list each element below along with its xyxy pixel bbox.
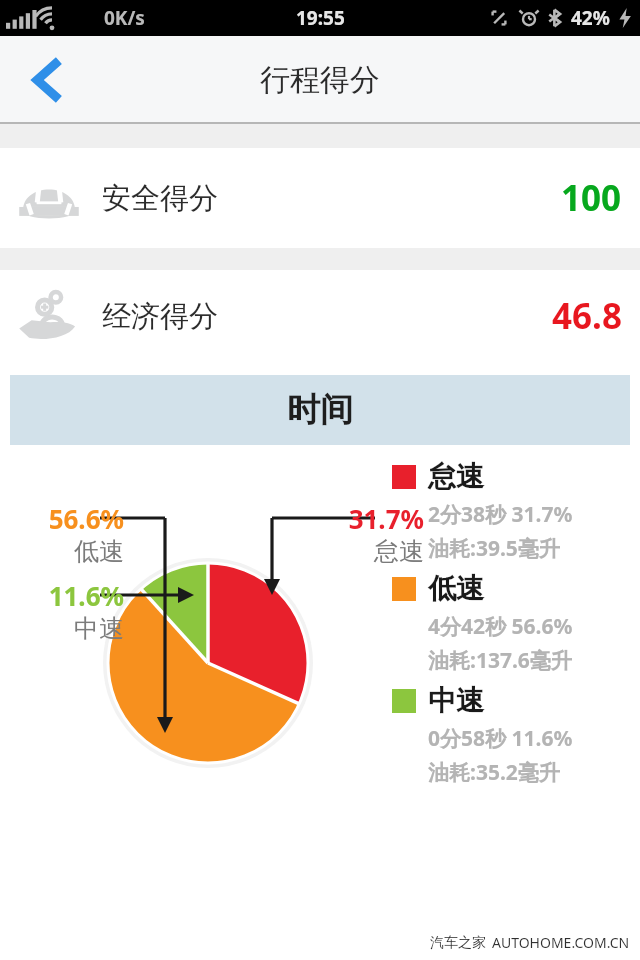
staticText: 42% <box>571 5 610 31</box>
button[interactable]: Back <box>0 36 96 124</box>
staticText: 经济得分 <box>102 298 218 335</box>
staticText: 低速 <box>74 536 124 567</box>
button[interactable]: 经济得分 <box>0 270 640 362</box>
staticText: 56.6% <box>48 501 124 536</box>
staticText: 中速 <box>428 683 484 718</box>
staticText: 油耗:137.6毫升 <box>428 646 572 675</box>
staticText: 4分42秒 56.6% <box>428 612 573 641</box>
staticText: 100 <box>561 174 622 222</box>
staticText: 19:55 <box>296 5 345 31</box>
staticText: 31.7% <box>348 501 424 536</box>
staticText: AUTOHOME.COM.CN <box>492 933 630 952</box>
staticText: 0K/s <box>104 5 145 31</box>
staticText: 低速 <box>428 571 484 606</box>
staticText: 行程得分 <box>260 61 380 99</box>
staticText: 怠速 <box>374 536 424 567</box>
staticText: 油耗:39.5毫升 <box>428 534 560 563</box>
staticText: 0分58秒 11.6% <box>428 724 573 753</box>
staticText: 怠速 <box>428 459 484 494</box>
staticText: 安全得分 <box>102 180 218 217</box>
staticText: 中速 <box>74 613 124 644</box>
staticText: 2分38秒 31.7% <box>428 500 573 529</box>
button[interactable]: 安全得分 <box>0 148 640 248</box>
staticText: 时间 <box>287 389 353 431</box>
staticText: 46.8 <box>552 292 622 340</box>
staticText: 11.6% <box>48 578 124 613</box>
staticText: 油耗:35.2毫升 <box>428 758 560 787</box>
staticText: 汽车之家 <box>430 934 486 952</box>
